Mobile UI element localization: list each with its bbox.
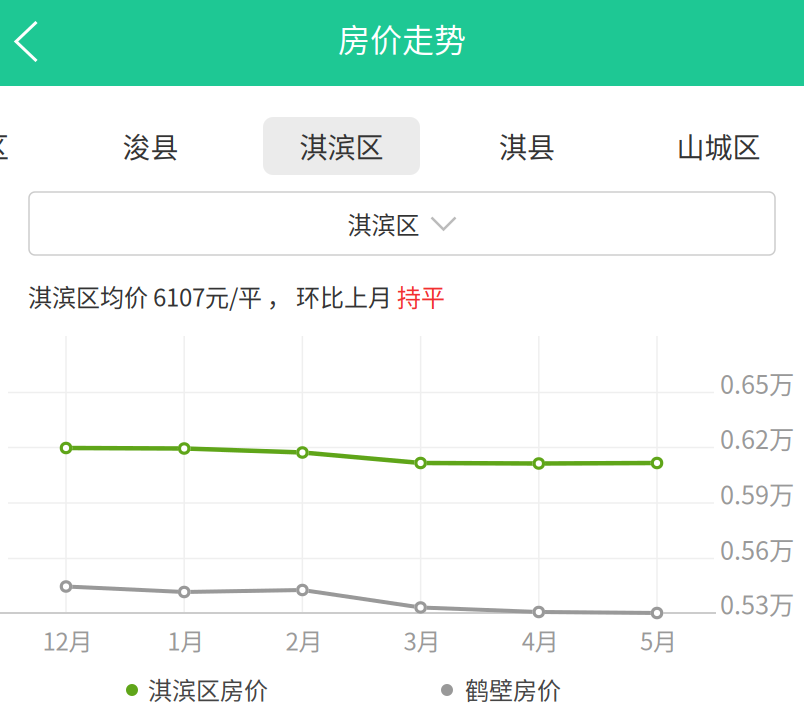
staticText: 0.65万 <box>720 365 794 401</box>
staticText: 2月 <box>285 623 322 657</box>
staticText: 3月 <box>404 623 441 657</box>
button[interactable]: 浚县 <box>85 117 215 175</box>
staticText: 区 <box>0 126 9 166</box>
staticText: 山城区 <box>676 126 760 166</box>
button[interactable]: 淇滨区 <box>29 192 775 255</box>
staticText: 0.53万 <box>720 585 794 622</box>
staticText: 浚县 <box>122 126 178 166</box>
staticText: 淇滨区 <box>299 126 383 166</box>
staticText: 淇县 <box>499 126 555 166</box>
staticText: 淇滨区均价 6107元/平 ， 环比上月 <box>28 279 397 313</box>
button[interactable]: Back <box>8 14 56 73</box>
staticText: 淇滨区房价 <box>148 672 268 706</box>
staticText: 淇滨区 <box>347 206 419 241</box>
staticText: 0.59万 <box>720 475 794 512</box>
staticText: 1月 <box>167 623 204 657</box>
staticText: 12月 <box>42 623 92 657</box>
staticText: 5月 <box>640 623 677 657</box>
staticText: 0.56万 <box>720 531 794 567</box>
staticText: 0.62万 <box>720 420 794 456</box>
staticText: 持平 <box>397 279 445 313</box>
button[interactable]: 山城区 <box>640 117 797 175</box>
button[interactable]: 淇滨区 <box>263 117 420 175</box>
staticText: 4月 <box>522 623 559 657</box>
button[interactable]: 淇县 <box>462 117 592 175</box>
staticText: 房价走势 <box>338 15 466 61</box>
staticText: 鹤壁房价 <box>465 672 561 706</box>
